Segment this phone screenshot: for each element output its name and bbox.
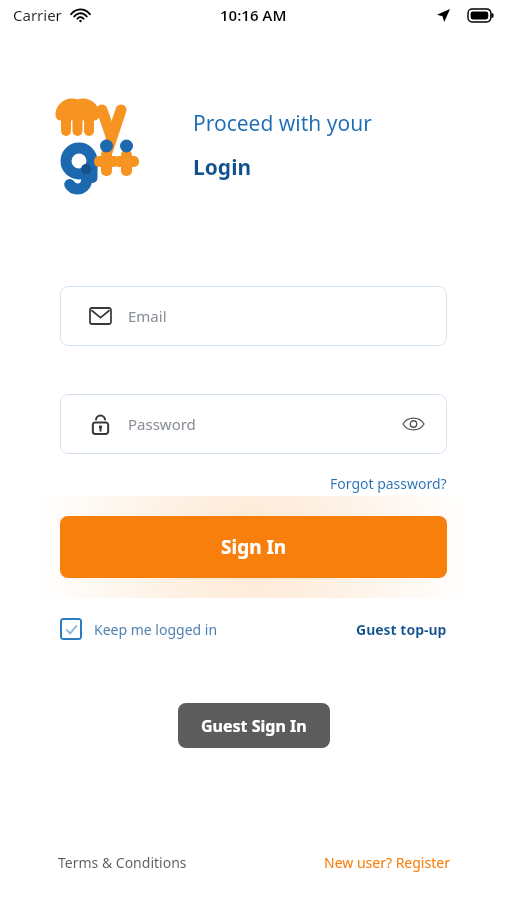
staticText: Sign In [221, 534, 287, 560]
staticText: Password [128, 414, 196, 434]
staticText: Email [128, 306, 167, 326]
staticText: Forgot password? [330, 474, 447, 493]
button[interactable]: Forgot password? [300, 470, 447, 496]
button[interactable]: Terms & Conditions [58, 853, 187, 872]
staticText: Carrier [13, 5, 62, 25]
staticText: New user? Register [324, 853, 450, 872]
button[interactable]: Guest Sign In [178, 703, 330, 748]
staticText: Guest Sign In [201, 715, 307, 737]
button[interactable]: Password [60, 394, 447, 454]
button[interactable]: Email [60, 286, 447, 346]
button[interactable]: New user? Register [324, 853, 450, 872]
button[interactable]: Show password [395, 406, 431, 442]
staticText: Keep me logged in [94, 620, 218, 639]
button[interactable]: Sign In [60, 516, 447, 578]
button[interactable]: Keep me logged in [60, 618, 218, 640]
staticText: Guest top-up [356, 620, 447, 639]
staticText: Proceed with your [193, 109, 372, 138]
staticText: Terms & Conditions [58, 853, 187, 872]
button[interactable]: Guest top-up [356, 620, 447, 639]
staticText: Login [193, 153, 252, 182]
staticText: 10:16 AM [220, 5, 287, 25]
